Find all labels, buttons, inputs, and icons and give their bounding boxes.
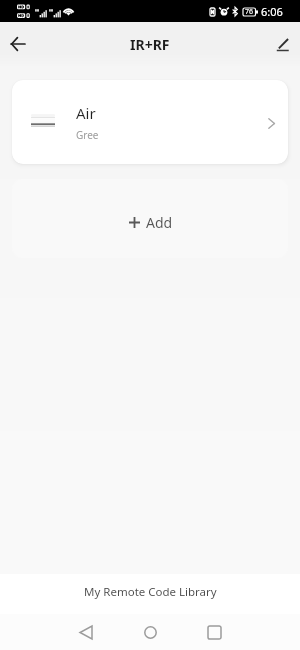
staticText: IR+RF bbox=[130, 35, 170, 54]
button[interactable]: Add bbox=[12, 179, 288, 258]
button[interactable]: Back bbox=[2, 28, 34, 60]
button[interactable]: Recents bbox=[194, 614, 234, 650]
staticText: Add bbox=[146, 213, 173, 232]
button[interactable]: My Remote Code Library bbox=[0, 574, 300, 614]
button[interactable]: Edit bbox=[266, 28, 298, 60]
staticText: 76 bbox=[245, 7, 254, 17]
staticText: Gree bbox=[76, 128, 99, 142]
staticText: 6:06 bbox=[261, 4, 283, 19]
button[interactable]: Air bbox=[12, 80, 288, 164]
button[interactable]: Home bbox=[130, 614, 170, 650]
button[interactable]: Back bbox=[66, 614, 106, 650]
staticText: Air bbox=[76, 103, 96, 123]
staticText: My Remote Code Library bbox=[84, 584, 217, 600]
